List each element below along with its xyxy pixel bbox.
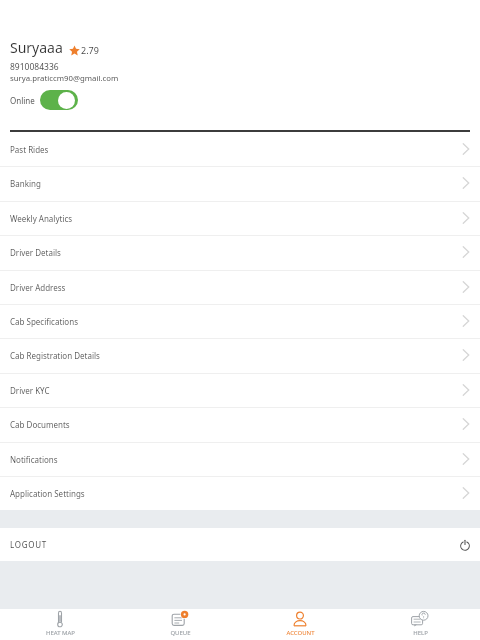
staticText: HELP — [413, 629, 428, 637]
staticText: Cab Documents — [10, 419, 70, 430]
staticText: Past Rides — [10, 144, 49, 155]
staticText: Cab Registration Details — [10, 350, 100, 361]
staticText: 8910084336 — [10, 61, 59, 73]
other: Log out — [459, 539, 471, 551]
button[interactable]: Driver KYC — [0, 373, 480, 407]
staticText: LOGOUT — [10, 539, 47, 550]
button[interactable]: ACCOUNT — [240, 609, 360, 640]
staticText: Suryaaa — [10, 38, 63, 57]
button[interactable]: Notifications — [0, 442, 480, 476]
button[interactable]: QUEUE — [120, 609, 240, 640]
button[interactable]: Cab Specifications — [0, 304, 480, 338]
button[interactable]: Driver Address — [0, 270, 480, 304]
staticText: Application Settings — [10, 488, 85, 499]
button[interactable]: Cab Documents — [0, 407, 480, 441]
staticText: HEAT MAP — [46, 629, 75, 637]
staticText: surya.praticcm90@gmail.com — [10, 73, 119, 84]
staticText: 2.79 — [81, 44, 99, 56]
staticText: Cab Specifications — [10, 316, 78, 327]
staticText: ACCOUNT — [286, 629, 315, 637]
button[interactable]: HEAT MAP — [0, 609, 120, 640]
button[interactable]: Weekly Analytics — [0, 201, 480, 235]
staticText: Driver Address — [10, 282, 66, 293]
staticText: Banking — [10, 178, 41, 189]
button[interactable]: Application Settings — [0, 476, 480, 510]
button[interactable]: Past Rides — [0, 132, 480, 166]
button[interactable]: LOGOUT — [0, 528, 480, 561]
staticText: Driver Details — [10, 247, 61, 258]
staticText: QUEUE — [170, 629, 191, 637]
staticText: Driver KYC — [10, 385, 50, 396]
staticText: Online — [10, 95, 35, 106]
button[interactable]: HELP — [360, 609, 480, 640]
staticText: Notifications — [10, 454, 58, 465]
button[interactable]: Banking — [0, 166, 480, 200]
button[interactable]: Driver Details — [0, 235, 480, 269]
button[interactable]: Online toggle — [40, 90, 78, 110]
button[interactable]: Cab Registration Details — [0, 338, 480, 372]
staticText: Weekly Analytics — [10, 213, 73, 224]
